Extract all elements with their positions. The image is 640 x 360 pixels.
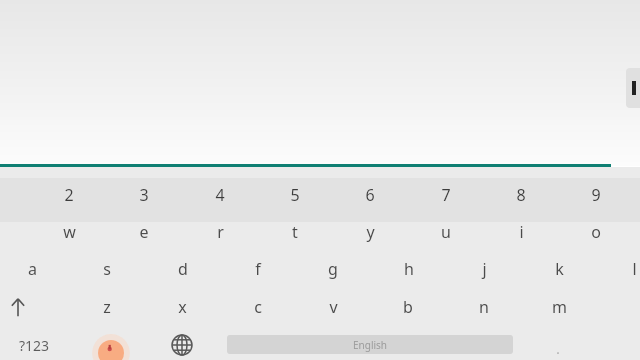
staticText: English: [353, 338, 388, 352]
button[interactable]: 4: [188, 175, 252, 215]
button[interactable]: i: [489, 212, 553, 252]
button[interactable]: 5: [263, 175, 327, 215]
staticText: k: [555, 258, 564, 280]
button[interactable]: n: [452, 287, 516, 327]
button[interactable]: f: [226, 249, 290, 289]
staticText: o: [591, 221, 601, 243]
staticText: ?123: [19, 336, 50, 355]
button[interactable]: v: [301, 287, 365, 327]
button[interactable]: o: [564, 212, 628, 252]
button[interactable]: b: [376, 287, 440, 327]
staticText: l: [632, 258, 637, 280]
staticText: z: [103, 296, 111, 318]
button[interactable]: 9: [564, 175, 628, 215]
button[interactable]: English: [227, 335, 513, 354]
button[interactable]: u: [414, 212, 478, 252]
staticText: f: [255, 258, 261, 280]
button[interactable]: s: [75, 249, 139, 289]
button[interactable]: 6: [338, 175, 402, 215]
staticText: .: [556, 340, 560, 358]
button[interactable]: Emoji: [86, 327, 136, 360]
staticText: b: [403, 296, 413, 318]
staticText: j: [482, 258, 487, 280]
staticText: 8: [516, 184, 526, 206]
button[interactable]: d: [151, 249, 215, 289]
staticText: d: [178, 258, 188, 280]
staticText: y: [366, 221, 375, 243]
staticText: u: [441, 221, 451, 243]
button[interactable]: j: [452, 249, 516, 289]
button[interactable]: 8: [489, 175, 553, 215]
staticText: 4: [215, 184, 225, 206]
staticText: 2: [64, 184, 74, 206]
staticText: t: [292, 221, 298, 243]
button[interactable]: e: [112, 212, 176, 252]
staticText: w: [63, 221, 76, 243]
staticText: m: [552, 296, 567, 318]
button[interactable]: c: [226, 287, 290, 327]
button[interactable]: z: [75, 287, 139, 327]
staticText: x: [178, 296, 187, 318]
button[interactable]: ?123: [0, 327, 50, 360]
staticText: 9: [591, 184, 601, 206]
button[interactable]: g: [301, 249, 365, 289]
staticText: e: [139, 221, 149, 243]
button[interactable]: x: [150, 287, 214, 327]
button[interactable]: Menu: [626, 68, 640, 108]
staticText: c: [254, 296, 262, 318]
staticText: 3: [139, 184, 149, 206]
staticText: a: [28, 258, 37, 280]
button[interactable]: 7: [414, 175, 478, 215]
staticText: g: [328, 258, 338, 280]
button[interactable]: y: [338, 212, 402, 252]
staticText: i: [519, 221, 524, 243]
staticText: s: [103, 258, 111, 280]
button[interactable]: 2: [37, 175, 101, 215]
staticText: r: [217, 221, 224, 243]
button[interactable]: m: [527, 287, 591, 327]
staticText: v: [329, 296, 338, 318]
button[interactable]: r: [188, 212, 252, 252]
staticText: 7: [441, 184, 451, 206]
button[interactable]: a: [0, 249, 64, 289]
button[interactable]: t: [263, 212, 327, 252]
button[interactable]: h: [377, 249, 441, 289]
button[interactable]: w: [37, 212, 101, 252]
button[interactable]: l: [602, 249, 640, 289]
button[interactable]: Shift: [0, 287, 44, 327]
button[interactable]: Switch language: [156, 327, 208, 360]
button[interactable]: 3: [112, 175, 176, 215]
staticText: 5: [290, 184, 300, 206]
staticText: 6: [365, 184, 375, 206]
button[interactable]: k: [527, 249, 591, 289]
staticText: h: [404, 258, 414, 280]
staticText: n: [479, 296, 489, 318]
